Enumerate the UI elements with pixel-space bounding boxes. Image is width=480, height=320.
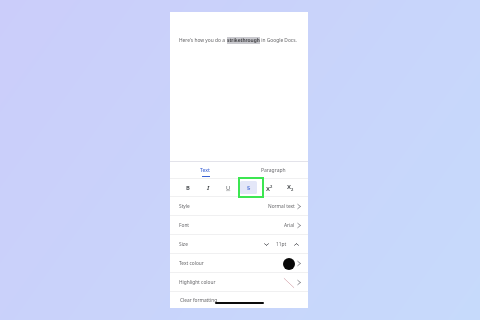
button[interactable]: Text	[170, 162, 239, 178]
button[interactable]: Highlight colour	[170, 273, 308, 292]
other: Bold	[186, 184, 190, 192]
other: Superscript	[266, 183, 274, 193]
staticText: Text colour	[179, 260, 204, 267]
staticText: Font	[179, 222, 190, 229]
other: Italic	[207, 184, 210, 192]
staticText: Clear formatting	[180, 297, 218, 304]
staticText: 2	[291, 187, 294, 192]
button[interactable]: Paragraph	[239, 162, 308, 178]
button[interactable]: Bold	[178, 179, 198, 196]
button[interactable]: Decrease font size	[262, 240, 271, 249]
staticText: Text	[200, 167, 210, 174]
staticText: X	[287, 183, 292, 191]
staticText: U	[226, 184, 231, 192]
button[interactable]: Strikethrough	[240, 181, 257, 194]
button[interactable]: Subscript	[280, 179, 301, 196]
staticText: strikethrough	[227, 37, 260, 44]
staticText: 11pt	[276, 241, 287, 248]
button[interactable]: Increase font size	[292, 240, 301, 249]
staticText: S	[247, 184, 251, 192]
staticText: B	[186, 184, 190, 192]
staticText: Arial	[284, 222, 295, 229]
other: Subscript	[287, 183, 295, 193]
button[interactable]: Underline	[218, 179, 238, 196]
staticText: I	[207, 184, 210, 192]
other: Underline	[226, 184, 231, 192]
staticText: Size	[179, 241, 188, 248]
button[interactable]: Italic	[198, 179, 218, 196]
staticText: Style	[179, 203, 190, 210]
staticText: Normal text	[268, 203, 295, 210]
staticText: 2	[270, 184, 273, 189]
button[interactable]: Style	[170, 197, 308, 216]
staticText: Here's how you do a	[179, 37, 227, 44]
staticText: Highlight colour	[179, 279, 216, 286]
staticText: in Google Docs.	[260, 37, 297, 44]
staticText: Paragraph	[261, 167, 286, 174]
button[interactable]: Clear formatting	[170, 292, 308, 308]
button[interactable]: Text colour	[170, 254, 308, 273]
button[interactable]: Superscript	[259, 179, 280, 196]
staticText: X	[266, 185, 271, 193]
button[interactable]: Font	[170, 216, 308, 235]
